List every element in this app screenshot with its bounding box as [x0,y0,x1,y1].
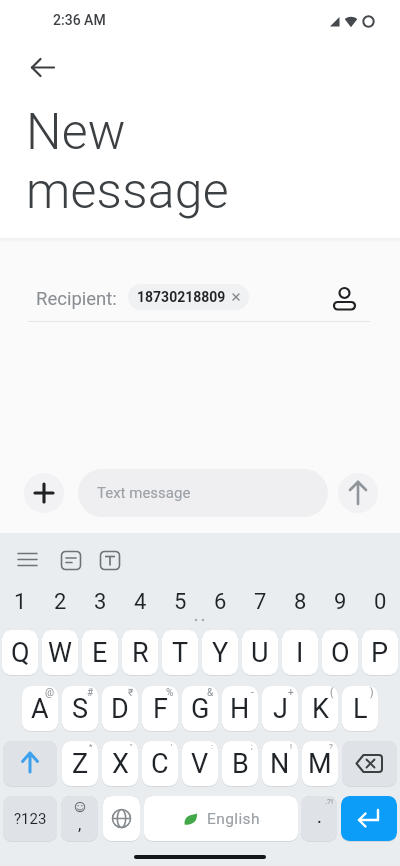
button[interactable]: C [142,741,178,786]
staticText: & [207,687,214,699]
staticText: ( [330,687,334,699]
button[interactable] [103,796,140,841]
staticText: Text message [97,484,191,502]
button[interactable]: H [222,686,258,731]
button[interactable] [55,546,87,578]
staticText: 3 [94,589,107,615]
button[interactable]: P [362,630,398,675]
button[interactable]: ?123 [3,796,57,841]
button[interactable]: U [242,630,278,675]
button[interactable]: A [22,686,58,731]
staticText: G [191,693,210,725]
staticText: , [78,814,82,834]
staticText: K [312,693,329,725]
button[interactable]: 0 [360,586,400,618]
button[interactable]: J [262,686,298,731]
button[interactable]: 18730218809 [128,284,249,310]
staticText: Recipient: [36,288,117,310]
button[interactable]: D [102,686,138,731]
button[interactable]: I [282,630,318,675]
staticText: O [331,637,350,669]
button[interactable]: F [142,686,178,731]
button[interactable]: 5 [160,586,200,618]
staticText: + [288,687,294,699]
staticText: A [31,693,49,725]
staticText: : [211,742,213,751]
button[interactable]: 3 [80,586,120,618]
staticText: * [89,742,93,751]
staticText: % [166,687,174,699]
button[interactable]: Y [202,630,238,675]
button[interactable]: . [301,796,337,841]
button[interactable]: B [222,741,258,786]
button[interactable]: L [342,686,378,731]
staticText: ? [329,742,333,751]
button[interactable] [342,741,397,786]
button[interactable]: V [182,741,218,786]
staticText: N [270,748,290,780]
staticText: M [308,748,332,780]
staticText: E [92,637,108,669]
button[interactable]: S [62,686,98,731]
staticText: P [371,637,389,669]
staticText: " [130,742,133,751]
staticText: Y [212,637,229,669]
staticText: B [232,748,249,780]
staticText: J [273,693,288,725]
staticText: L [353,693,368,725]
staticText: H [230,693,250,725]
button[interactable]: Text message [78,469,328,517]
button[interactable]: K [302,686,338,731]
staticText: New [26,103,126,162]
button[interactable]: 4 [120,586,160,618]
staticText: Q [11,637,30,669]
staticText: 6 [214,589,227,615]
staticText: F [153,693,168,725]
staticText: .?! [325,797,333,806]
button[interactable]: English [144,796,298,841]
button[interactable]: 2 [40,586,80,618]
staticText: 8 [294,589,307,615]
button[interactable] [24,473,64,513]
button[interactable]: 1 [0,586,40,618]
staticText: message [26,162,229,221]
staticText: U [251,637,269,669]
button[interactable]: Z [62,741,98,786]
button[interactable]: E [82,630,118,675]
staticText: V [191,748,209,780]
button[interactable]: G [182,686,218,731]
button[interactable] [12,546,44,578]
staticText: ' [171,742,173,751]
button[interactable]: 6 [200,586,240,618]
button[interactable]: N [262,741,298,786]
button[interactable]: Q [2,630,38,675]
staticText: ; [251,742,253,751]
button[interactable]: T [162,630,198,675]
staticText: - [251,687,254,699]
staticText: S [72,693,89,725]
staticText: 2:36 AM [53,12,106,28]
button[interactable]: M [302,741,338,786]
staticText: ) [370,687,374,699]
button[interactable] [329,280,359,314]
staticText: English [207,810,260,828]
button[interactable]: X [102,741,138,786]
staticText: X [112,748,129,780]
button[interactable]: , [61,796,98,841]
button[interactable] [3,741,57,786]
staticText: 5 [174,589,187,615]
button[interactable]: 7 [240,586,280,618]
staticText: C [151,748,169,780]
staticText: 0 [374,589,387,615]
button[interactable]: O [322,630,358,675]
button[interactable]: 9 [320,586,360,618]
button[interactable]: W [42,630,78,675]
button[interactable] [341,796,397,841]
button[interactable] [94,546,126,578]
staticText: W [48,637,72,669]
button[interactable]: R [122,630,158,675]
button[interactable]: 8 [280,586,320,618]
button[interactable] [338,473,378,513]
button[interactable] [24,50,60,86]
staticText: Z [72,748,89,780]
